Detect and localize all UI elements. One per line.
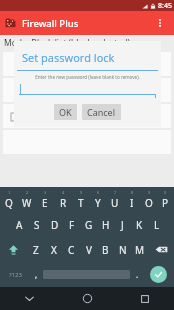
button[interactable]: K bbox=[131, 212, 148, 237]
button[interactable]: More options bbox=[150, 13, 170, 33]
staticText: 5 bbox=[80, 190, 83, 195]
staticText: 8:45 bbox=[158, 1, 172, 11]
button[interactable]: J bbox=[114, 212, 131, 237]
button[interactable]: Shift bbox=[0, 237, 27, 262]
staticText: R bbox=[60, 196, 67, 210]
staticText: G bbox=[85, 218, 93, 232]
staticText: O bbox=[145, 196, 153, 210]
button[interactable]: F bbox=[63, 212, 80, 237]
staticText: K bbox=[136, 218, 143, 232]
staticText: 3 bbox=[44, 190, 47, 195]
button[interactable]: Back bbox=[0, 287, 58, 310]
staticText: Y bbox=[95, 196, 101, 210]
button[interactable]: Home bbox=[58, 287, 116, 310]
button[interactable]: 7 bbox=[106, 187, 123, 212]
staticText: U bbox=[111, 196, 119, 210]
staticText: D bbox=[51, 218, 59, 232]
staticText: Set password lock bbox=[22, 50, 115, 65]
staticText: I bbox=[130, 196, 134, 210]
button[interactable]: Enter bbox=[144, 262, 172, 287]
button[interactable]: 8 bbox=[123, 187, 140, 212]
staticText: (root) - Applications running as root bbox=[41, 112, 150, 121]
staticText: 0 bbox=[164, 190, 167, 195]
button[interactable]: Z bbox=[27, 237, 45, 262]
staticText: 1 bbox=[8, 190, 11, 195]
staticText: M bbox=[135, 243, 145, 257]
button[interactable]: L bbox=[148, 212, 165, 237]
staticText: C bbox=[68, 243, 75, 257]
button[interactable]: C bbox=[63, 237, 80, 262]
button[interactable]: 2 bbox=[18, 187, 36, 212]
staticText: A bbox=[16, 218, 23, 232]
staticText: F bbox=[69, 218, 75, 232]
button[interactable]: Delete bbox=[148, 237, 174, 262]
button[interactable]: (root) - Applications running as root bbox=[3, 104, 171, 128]
button[interactable]: H bbox=[97, 212, 114, 237]
staticText: W bbox=[22, 196, 32, 210]
button[interactable]: 3 bbox=[36, 187, 54, 212]
staticText: 9 bbox=[148, 190, 151, 195]
staticText: V bbox=[86, 243, 92, 257]
button[interactable]: 0 bbox=[157, 187, 174, 212]
button[interactable]: S bbox=[28, 212, 46, 237]
staticText: H bbox=[102, 218, 110, 232]
staticText: Mode: Black list (block selected) bbox=[4, 37, 130, 49]
staticText: E bbox=[42, 196, 48, 210]
button[interactable]: G bbox=[80, 212, 97, 237]
button[interactable] bbox=[3, 78, 171, 102]
button[interactable]: Recent apps bbox=[116, 287, 174, 310]
staticText: Enter the new password (leave blank to r… bbox=[14, 74, 161, 80]
staticText: J bbox=[121, 218, 124, 232]
button[interactable]: X bbox=[45, 237, 63, 262]
staticText: Firewall Plus bbox=[22, 17, 79, 30]
staticText: OK bbox=[59, 106, 72, 118]
button[interactable]: A bbox=[10, 212, 28, 237]
staticText: S bbox=[34, 218, 40, 232]
button[interactable]: 9 bbox=[140, 187, 157, 212]
button[interactable]: ?123 bbox=[2, 262, 29, 287]
button[interactable]: 5 bbox=[72, 187, 89, 212]
staticText: 7 bbox=[114, 190, 117, 195]
staticText: Q bbox=[5, 196, 13, 210]
staticText: L bbox=[154, 218, 160, 232]
staticText: 2 bbox=[26, 190, 29, 195]
staticText: X bbox=[51, 243, 57, 257]
button[interactable]: M bbox=[131, 237, 148, 262]
button[interactable]: 1 bbox=[0, 187, 18, 212]
staticText: 4 bbox=[62, 190, 65, 195]
staticText: Z bbox=[33, 243, 39, 257]
staticText: Cancel bbox=[87, 106, 116, 118]
staticText: 8 bbox=[131, 190, 134, 195]
staticText: P bbox=[162, 196, 169, 210]
button[interactable] bbox=[3, 52, 171, 76]
staticText: 6 bbox=[97, 190, 100, 195]
staticText: N bbox=[119, 243, 127, 257]
staticText: . bbox=[136, 269, 139, 280]
staticText: B bbox=[102, 243, 109, 257]
button[interactable]: N bbox=[114, 237, 131, 262]
button[interactable]: Cancel bbox=[82, 104, 121, 120]
button[interactable]: D bbox=[46, 212, 63, 237]
button[interactable]: V bbox=[80, 237, 97, 262]
staticText: , bbox=[35, 269, 38, 280]
button[interactable]: . bbox=[130, 262, 144, 287]
staticText: ?123 bbox=[9, 271, 22, 279]
button[interactable]: 6 bbox=[89, 187, 106, 212]
button[interactable]: 4 bbox=[54, 187, 72, 212]
staticText: T bbox=[78, 196, 84, 210]
button[interactable]: B bbox=[97, 237, 114, 262]
button[interactable]: OK bbox=[54, 104, 77, 120]
button[interactable]: , bbox=[29, 262, 43, 287]
